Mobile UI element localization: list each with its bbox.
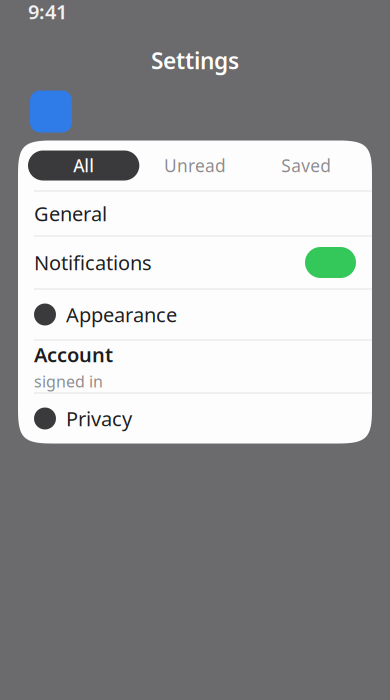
staticText: Saved: [281, 154, 331, 177]
button[interactable]: Appearance: [18, 289, 372, 339]
staticText: Settings: [151, 45, 239, 75]
button[interactable]: Account: [18, 340, 372, 392]
staticText: General: [34, 200, 107, 227]
staticText: Privacy: [66, 405, 132, 432]
button[interactable]: General: [18, 191, 372, 235]
staticText: All: [73, 154, 94, 177]
button[interactable]: All: [28, 150, 139, 180]
staticText: signed in: [34, 371, 103, 392]
button[interactable]: Unread: [139, 150, 251, 180]
staticText: Notifications: [34, 249, 152, 276]
button[interactable]: Saved: [251, 150, 362, 180]
staticText: Unread: [164, 154, 226, 177]
staticText: Appearance: [66, 301, 177, 328]
button[interactable]: Notifications: [18, 236, 372, 288]
staticText: Account: [34, 341, 113, 368]
button[interactable]: Privacy: [18, 393, 372, 443]
staticText: 9:41: [28, 0, 67, 25]
